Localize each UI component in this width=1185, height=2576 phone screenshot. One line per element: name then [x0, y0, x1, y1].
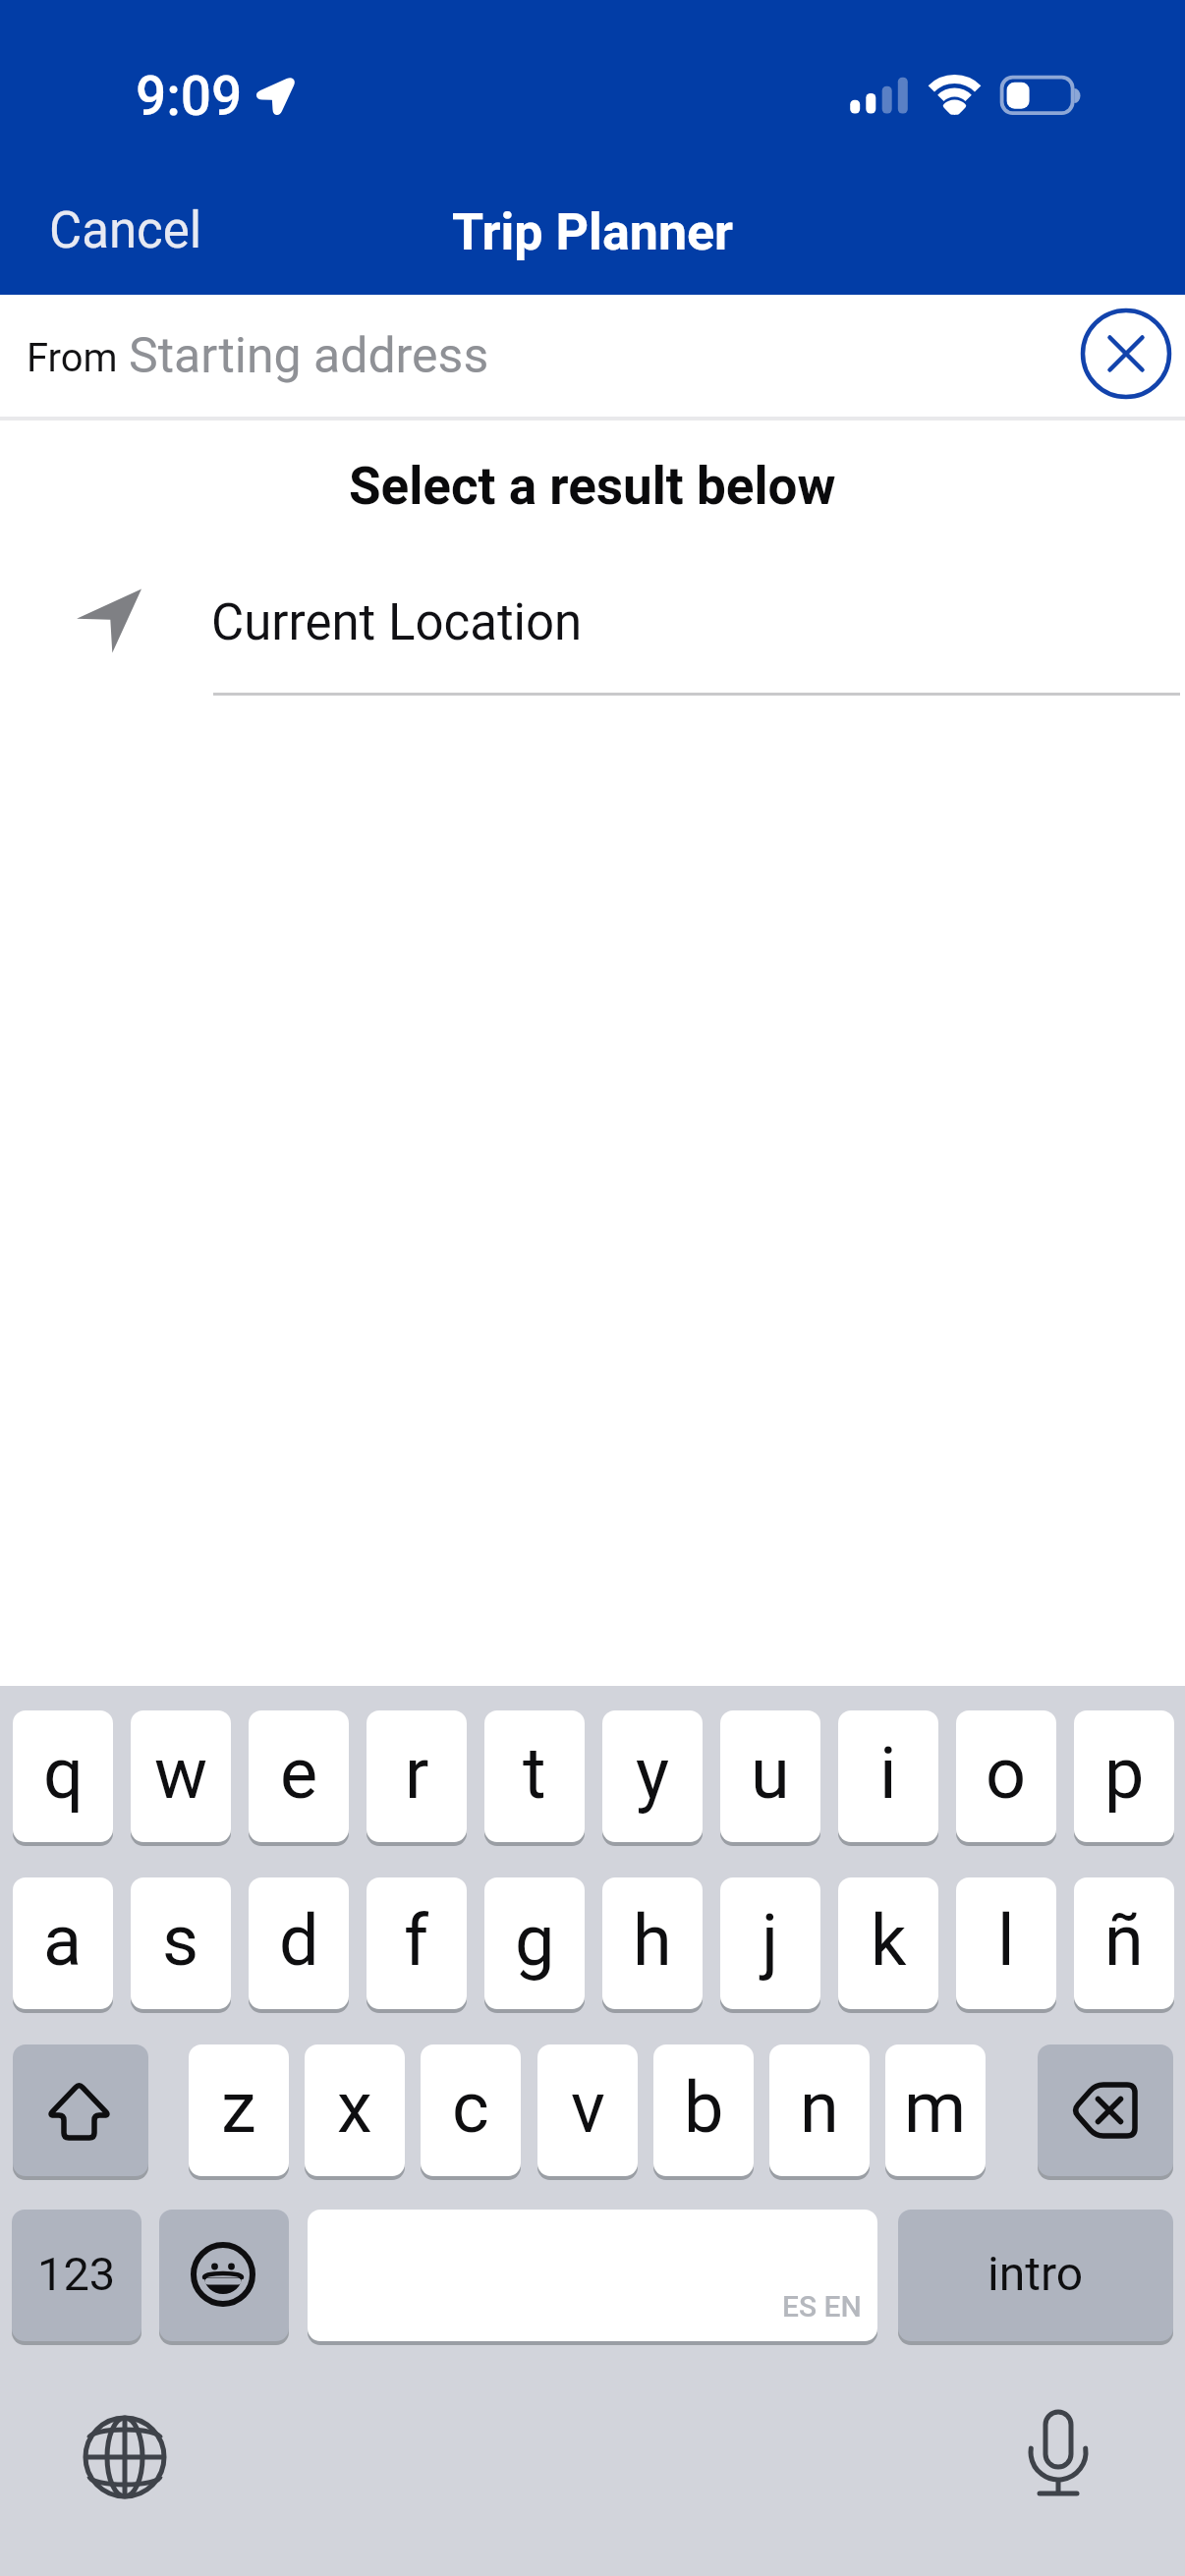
- staticText: j: [762, 1899, 779, 1982]
- staticText: s: [162, 1899, 199, 1982]
- button[interactable]: n: [769, 2044, 870, 2176]
- staticText: q: [43, 1732, 84, 1815]
- button[interactable]: p: [1074, 1710, 1174, 1842]
- button[interactable]: [0, 560, 1185, 696]
- button[interactable]: 123: [12, 2210, 141, 2341]
- button[interactable]: [66, 2398, 184, 2516]
- staticText: u: [751, 1732, 790, 1815]
- staticText: o: [986, 1732, 1027, 1815]
- staticText: Select a result below: [349, 456, 836, 517]
- button[interactable]: y: [602, 1710, 703, 1842]
- staticText: Trip Planner: [452, 202, 734, 262]
- staticText: v: [571, 2066, 605, 2149]
- staticText: g: [515, 1899, 555, 1982]
- staticText: ñ: [1104, 1899, 1144, 1982]
- button[interactable]: r: [367, 1710, 467, 1842]
- staticText: x: [337, 2066, 372, 2149]
- button[interactable]: g: [484, 1877, 585, 2009]
- staticText: 9:09: [136, 65, 243, 128]
- button[interactable]: v: [537, 2044, 638, 2176]
- staticText: y: [636, 1732, 670, 1815]
- staticText: r: [405, 1732, 429, 1815]
- staticText: h: [633, 1899, 672, 1982]
- staticText: intro: [987, 2246, 1084, 2301]
- staticText: c: [452, 2066, 489, 2149]
- button[interactable]: intro: [898, 2210, 1173, 2341]
- button[interactable]: x: [305, 2044, 405, 2176]
- staticText: z: [221, 2066, 256, 2149]
- staticText: a: [43, 1899, 83, 1982]
- button[interactable]: e: [249, 1710, 349, 1842]
- button[interactable]: h: [602, 1877, 703, 2009]
- button[interactable]: a: [13, 1877, 113, 2009]
- button[interactable]: k: [838, 1877, 938, 2009]
- button[interactable]: b: [653, 2044, 754, 2176]
- staticText: m: [904, 2066, 967, 2149]
- button[interactable]: j: [720, 1877, 820, 2009]
- button[interactable]: [999, 2398, 1117, 2516]
- button[interactable]: c: [421, 2044, 521, 2176]
- staticText: f: [404, 1899, 429, 1982]
- staticText: k: [871, 1899, 907, 1982]
- staticText: Cancel: [49, 201, 202, 260]
- button[interactable]: s: [131, 1877, 231, 2009]
- staticText: e: [280, 1732, 318, 1815]
- button[interactable]: d: [249, 1877, 349, 2009]
- button[interactable]: m: [885, 2044, 986, 2176]
- staticText: b: [684, 2066, 724, 2149]
- staticText: i: [879, 1732, 897, 1815]
- staticText: From: [27, 335, 118, 381]
- button[interactable]: q: [13, 1710, 113, 1842]
- button[interactable]: f: [367, 1877, 467, 2009]
- button[interactable]: z: [189, 2044, 289, 2176]
- button[interactable]: ES EN: [308, 2210, 877, 2341]
- button[interactable]: o: [956, 1710, 1056, 1842]
- button[interactable]: t: [484, 1710, 585, 1842]
- staticText: t: [523, 1732, 546, 1815]
- button[interactable]: Cancel: [24, 189, 230, 273]
- staticText: Current Location: [211, 593, 583, 652]
- button[interactable]: [13, 2044, 148, 2176]
- staticText: p: [1104, 1732, 1145, 1815]
- button[interactable]: [1077, 305, 1175, 403]
- staticText: n: [800, 2066, 839, 2149]
- staticText: Starting address: [129, 327, 489, 385]
- button[interactable]: w: [131, 1710, 231, 1842]
- staticText: l: [997, 1899, 1015, 1982]
- button[interactable]: [159, 2210, 289, 2341]
- staticText: d: [279, 1899, 319, 1982]
- staticText: ES EN: [782, 2289, 862, 2324]
- staticText: w: [154, 1732, 208, 1815]
- button[interactable]: u: [720, 1710, 820, 1842]
- button[interactable]: l: [956, 1877, 1056, 2009]
- button[interactable]: ñ: [1074, 1877, 1174, 2009]
- staticText: 123: [37, 2247, 116, 2301]
- button[interactable]: [1038, 2044, 1173, 2176]
- button[interactable]: i: [838, 1710, 938, 1842]
